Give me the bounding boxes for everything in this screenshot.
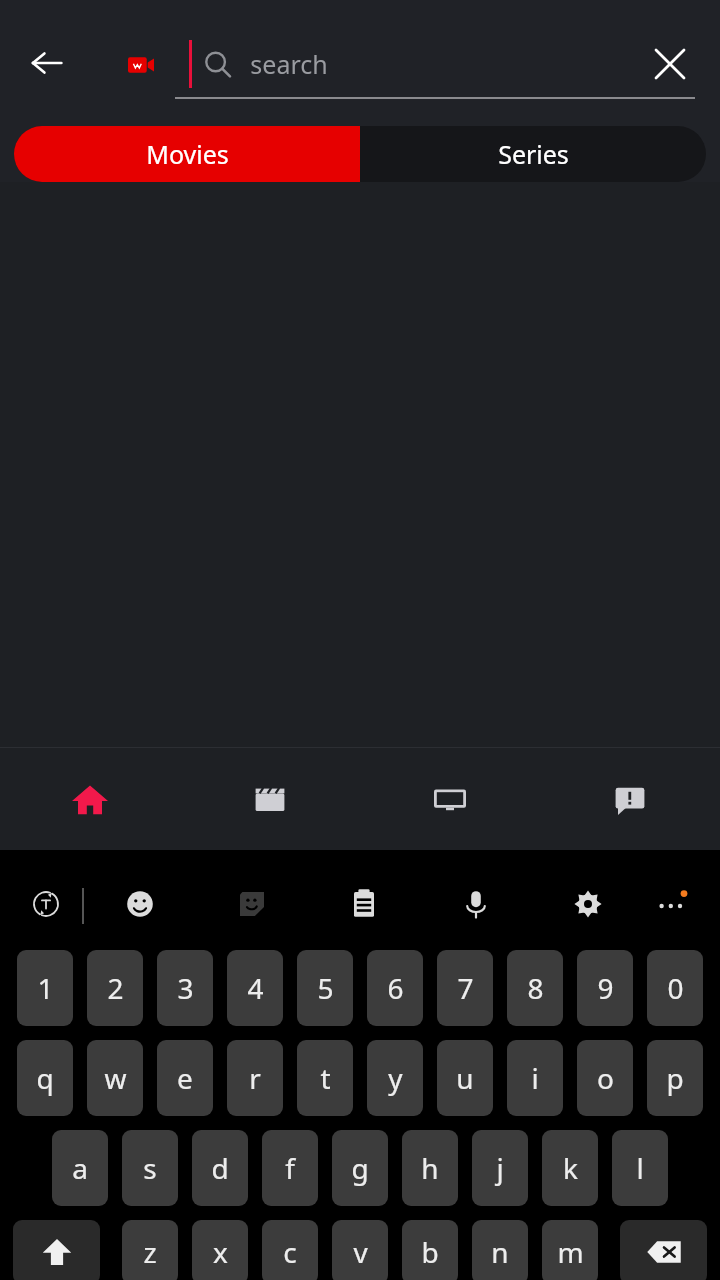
staticText: s (143, 1149, 157, 1187)
staticText: 9 (597, 969, 614, 1007)
button[interactable]: 0 (647, 950, 703, 1026)
button[interactable]: y (367, 1040, 423, 1116)
button[interactable]: g (332, 1130, 388, 1206)
button[interactable]: Shift (13, 1220, 100, 1280)
button[interactable]: Clipboard (336, 876, 392, 932)
staticText: 2 (107, 969, 124, 1007)
staticText: l (636, 1149, 644, 1187)
staticText: 6 (387, 969, 404, 1007)
staticText: Series (498, 137, 569, 171)
staticText: e (177, 1059, 193, 1097)
button[interactable]: Backspace (620, 1220, 707, 1280)
button[interactable]: Voice input (448, 876, 504, 932)
button[interactable]: x (192, 1220, 248, 1280)
button[interactable]: Movies (14, 126, 360, 182)
button[interactable]: Emoji (112, 876, 168, 932)
button[interactable]: j (472, 1130, 528, 1206)
button[interactable]: App icon (118, 42, 164, 88)
button[interactable]: s (122, 1130, 178, 1206)
button[interactable]: w (87, 1040, 143, 1116)
button[interactable]: TV (360, 748, 540, 850)
staticText: j (496, 1149, 504, 1187)
button[interactable]: 3 (157, 950, 213, 1026)
button[interactable]: v (332, 1220, 388, 1280)
button[interactable]: t (297, 1040, 353, 1116)
staticText: w (104, 1059, 127, 1097)
button[interactable]: More options (644, 876, 700, 932)
staticText: y (388, 1059, 403, 1097)
button[interactable]: q (17, 1040, 73, 1116)
button[interactable]: a (52, 1130, 108, 1206)
button[interactable]: k (542, 1130, 598, 1206)
staticText: 7 (457, 969, 474, 1007)
button[interactable]: 6 (367, 950, 423, 1026)
button[interactable]: 1 (17, 950, 73, 1026)
staticText: 3 (177, 969, 194, 1007)
button[interactable]: d (192, 1130, 248, 1206)
staticText: u (456, 1059, 474, 1097)
button[interactable]: Settings (560, 876, 616, 932)
staticText: z (143, 1233, 157, 1271)
staticText: c (283, 1233, 297, 1271)
button[interactable]: 4 (227, 950, 283, 1026)
button[interactable]: Feedback (540, 748, 720, 850)
button[interactable]: b (402, 1220, 458, 1280)
staticText: b (421, 1233, 439, 1271)
staticText: 8 (527, 969, 544, 1007)
button[interactable]: c (262, 1220, 318, 1280)
button[interactable]: e (157, 1040, 213, 1116)
staticText: n (491, 1233, 509, 1271)
staticText: h (421, 1149, 439, 1187)
staticText: d (211, 1149, 229, 1187)
button[interactable]: l (612, 1130, 668, 1206)
staticText: t (320, 1059, 331, 1097)
staticText: f (285, 1149, 295, 1187)
staticText: 1 (37, 969, 54, 1007)
button[interactable]: 7 (437, 950, 493, 1026)
button[interactable]: Close (638, 32, 702, 96)
button[interactable]: 2 (87, 950, 143, 1026)
staticText: g (351, 1149, 369, 1187)
staticText: x (213, 1233, 228, 1271)
button[interactable]: Translate (18, 876, 74, 932)
button[interactable]: 8 (507, 950, 563, 1026)
staticText: k (563, 1149, 578, 1187)
staticText: search (250, 47, 328, 81)
staticText: q (36, 1059, 54, 1097)
staticText: v (353, 1233, 368, 1271)
button[interactable]: Back (14, 30, 80, 96)
button[interactable]: n (472, 1220, 528, 1280)
button[interactable]: o (577, 1040, 633, 1116)
button[interactable]: r (227, 1040, 283, 1116)
button[interactable]: Stickers (224, 876, 280, 932)
button[interactable]: u (437, 1040, 493, 1116)
staticText: a (72, 1149, 88, 1187)
button[interactable]: m (542, 1220, 598, 1280)
button[interactable]: z (122, 1220, 178, 1280)
button[interactable]: f (262, 1130, 318, 1206)
staticText: Movies (146, 137, 229, 171)
staticText: o (597, 1059, 614, 1097)
staticText: 0 (667, 969, 684, 1007)
staticText: 5 (317, 969, 334, 1007)
button[interactable]: Home (0, 748, 180, 850)
staticText: p (666, 1059, 684, 1097)
staticText: r (249, 1059, 261, 1097)
button[interactable]: h (402, 1130, 458, 1206)
button[interactable]: 9 (577, 950, 633, 1026)
button[interactable]: Series (360, 126, 706, 182)
staticText: m (557, 1233, 584, 1271)
button[interactable]: Movies (180, 748, 360, 850)
staticText: i (531, 1059, 539, 1097)
staticText: 4 (247, 969, 264, 1007)
button[interactable]: p (647, 1040, 703, 1116)
button[interactable]: 5 (297, 950, 353, 1026)
button[interactable]: i (507, 1040, 563, 1116)
